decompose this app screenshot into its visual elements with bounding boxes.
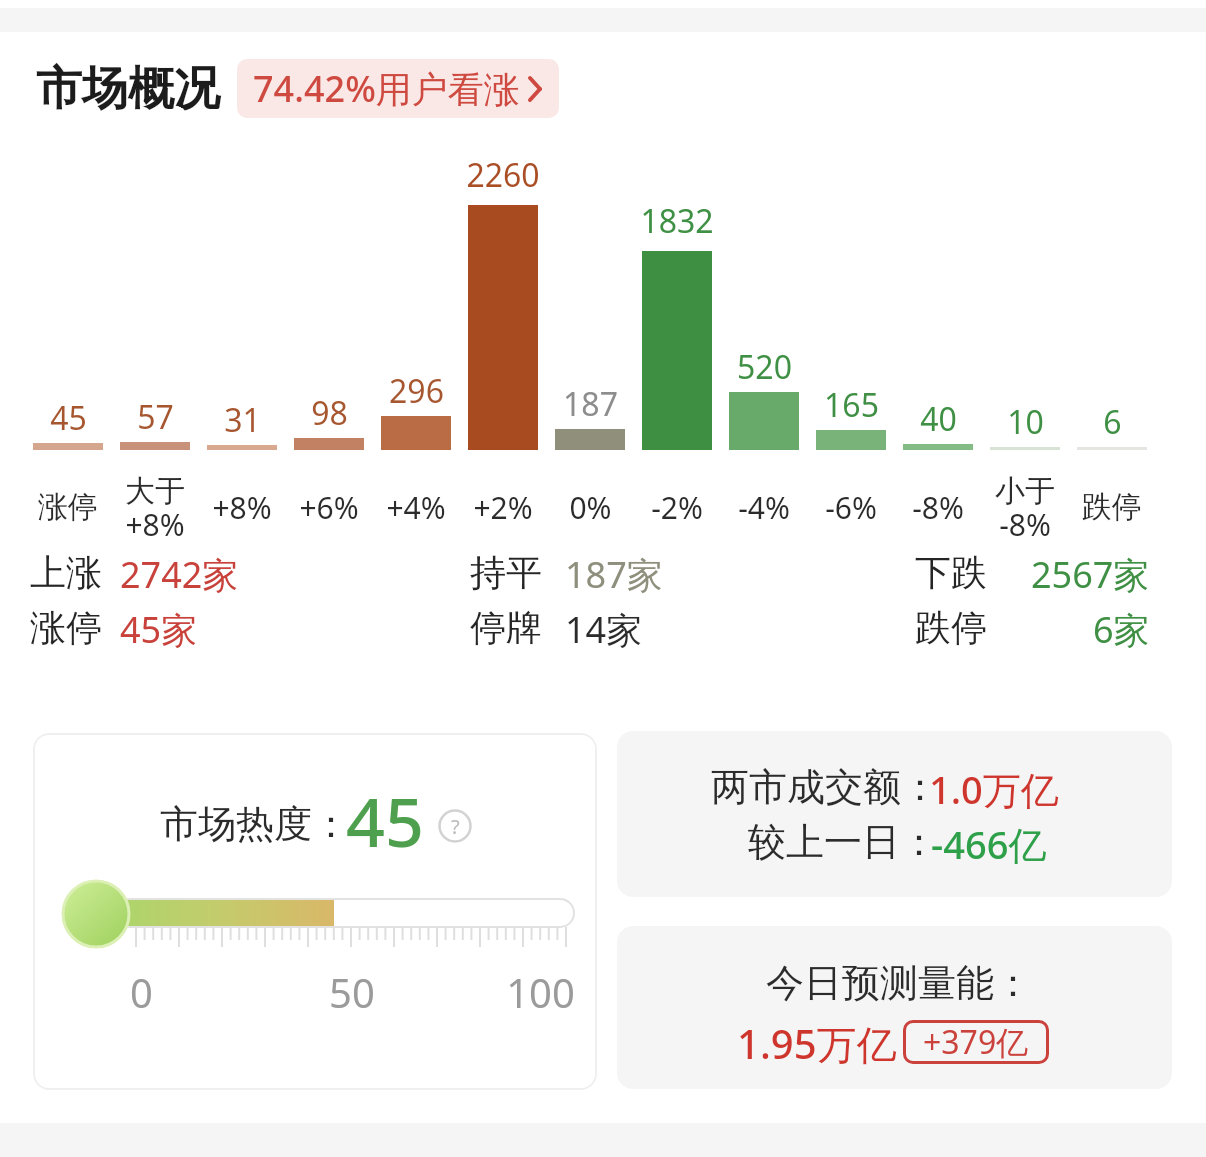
staticText: 10 [1007,400,1044,440]
staticText: 1.95万亿 [737,1016,897,1071]
staticText: 2260 [466,153,540,193]
staticText: 市场概况 [36,60,220,118]
staticText: -466亿 [931,818,1047,870]
staticText: 45家 [120,605,198,654]
staticText: 涨停 [30,605,102,650]
staticText: 大于 +8% [125,472,185,542]
staticText: 0% [569,487,612,528]
staticText: 停牌 [470,605,542,650]
button[interactable] [617,731,1172,897]
staticText: 520 [737,345,792,385]
staticText: 1832 [640,199,714,239]
staticText: +8% [212,487,272,528]
staticText: +2% [473,487,533,528]
staticText: 涨停 [38,488,98,526]
button[interactable] [617,926,1172,1089]
staticText: 57 [137,395,174,435]
staticText: 98 [311,391,348,431]
staticText: 6家 [1093,605,1150,654]
staticText: 较上一日： [748,818,938,866]
staticText: 2567家 [1031,550,1150,599]
staticText: 2742家 [120,550,239,599]
staticText: 50 [329,965,375,1015]
staticText: 100 [506,965,575,1015]
staticText: 6 [1103,400,1122,440]
staticText: 跌停 [915,605,987,650]
staticText: 上涨 [30,550,102,595]
staticText: 今日预测量能： [766,959,1032,1007]
staticText: 跌停 [1082,488,1142,526]
staticText: 40 [920,397,957,437]
button[interactable]: 74.42%用户看涨 [237,59,559,118]
staticText: -6% [825,487,877,528]
staticText: +4% [386,487,446,528]
staticText: 小于 -8% [995,472,1055,542]
staticText: 165 [824,383,879,423]
staticText: -4% [738,487,790,528]
staticText: 两市成交额： [711,763,939,811]
staticText: 持平 [470,550,542,595]
staticText: 1.0万亿 [929,763,1059,815]
staticText: +379亿 [923,1020,1029,1064]
staticText: 296 [389,369,444,409]
staticText: 下跌 [915,550,987,595]
staticText: +6% [299,487,359,528]
staticText: 31 [224,398,261,438]
staticText: 45 [50,396,87,436]
staticText: 45 [346,774,424,867]
staticText: 市场热度： [160,800,350,848]
button[interactable] [33,733,597,1090]
staticText: -2% [651,487,703,528]
staticText: ? [451,813,460,840]
staticText: -8% [912,487,964,528]
staticText: 187家 [565,550,663,599]
staticText: 0 [130,965,153,1015]
staticText: 74.42%用户看涨 [253,64,520,113]
staticText: 187 [563,382,618,422]
staticText: 14家 [565,605,643,654]
